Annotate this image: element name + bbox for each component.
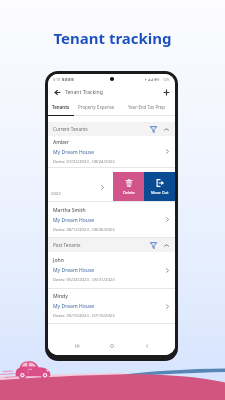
staticText: Year-End Tax Prep <box>128 104 166 110</box>
staticText: Dates: 07/22/2023 - 08/24/2023 <box>53 159 115 165</box>
staticText: My Dream House <box>53 149 95 156</box>
staticText: My Dream House <box>53 267 95 274</box>
button[interactable]: Year-End Tax Prep <box>118 99 175 115</box>
button[interactable]: Back <box>52 87 63 98</box>
button[interactable]: Current Tenants <box>48 122 175 136</box>
staticText: My Dream House <box>53 303 95 310</box>
button[interactable]: Back <box>140 339 153 352</box>
staticText: John <box>53 257 64 264</box>
button[interactable]: Amber <box>48 136 175 168</box>
staticText: Mindy <box>53 293 68 300</box>
staticText: Post Tenants <box>53 242 81 248</box>
button[interactable]: Delete <box>113 172 144 201</box>
staticText: Dates: 05/24/2023 - 05/31/2023 <box>53 277 115 283</box>
button[interactable]: Filter <box>149 241 158 250</box>
staticText: 6:10 <box>53 77 61 82</box>
button[interactable]: Add <box>161 87 172 98</box>
button[interactable]: Collapse <box>162 241 170 249</box>
staticText: Current Tenants <box>53 126 88 132</box>
button[interactable]: Filter <box>149 125 158 134</box>
button[interactable]: Mindy <box>48 289 175 324</box>
staticText: Tenant Tracking <box>65 89 103 96</box>
button[interactable]: Recent apps <box>70 339 83 352</box>
button[interactable]: Collapse <box>162 125 170 133</box>
button[interactable]: Martha Smith <box>48 202 175 238</box>
button[interactable]: Tenants <box>48 99 74 115</box>
staticText: Martha Smith <box>53 207 86 214</box>
staticText: Dates: 05/10/2023 - 07/10/2023 <box>53 313 115 319</box>
button[interactable]: Move Out <box>144 172 175 201</box>
staticText: 2023 <box>51 191 61 197</box>
staticText: Tenant tracking <box>53 28 172 48</box>
staticText: Tenants <box>52 104 70 110</box>
button[interactable]: John <box>48 252 175 289</box>
staticText: Property Expense <box>78 104 115 110</box>
staticText: Delete <box>123 190 135 195</box>
staticText: Dates: 08/12/2023 - 08/26/2023 <box>53 227 115 233</box>
staticText: Move Out <box>151 190 169 195</box>
button[interactable]: Property Expense <box>74 99 118 115</box>
button[interactable]: Post Tenants <box>48 238 175 252</box>
staticText: My Dream House <box>53 217 95 224</box>
staticText: 14% <box>163 78 170 82</box>
staticText: Amber <box>53 139 70 146</box>
button[interactable]: Home <box>105 339 118 352</box>
